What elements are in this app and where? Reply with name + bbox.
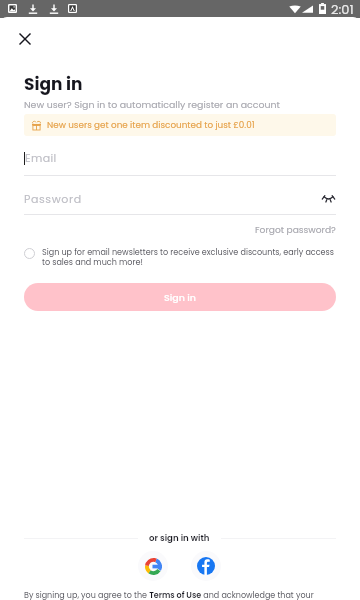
staticText: Email <box>25 150 57 165</box>
staticText: New users get one item discounted to jus… <box>47 119 255 131</box>
button[interactable]: Sign in with Google <box>138 551 168 581</box>
staticText: New user? Sign in to automatically regis… <box>24 98 280 111</box>
staticText: Forgot password? <box>255 223 336 236</box>
staticText: By signing up, you agree to the Terms of… <box>24 590 336 600</box>
staticText: or sign in with <box>149 532 210 544</box>
button[interactable]: Sign up for email newsletters to receive… <box>24 247 336 268</box>
button[interactable]: Show password <box>318 188 338 208</box>
button[interactable]: New users get one item discounted to jus… <box>24 114 336 136</box>
staticText: Sign in <box>164 291 196 304</box>
button[interactable]: Sign in with Facebook <box>191 551 221 581</box>
staticText: Password <box>24 191 82 206</box>
staticText: Sign up for email newsletters to receive… <box>42 247 336 268</box>
button[interactable]: Forgot password? <box>255 223 336 236</box>
button[interactable]: Close <box>14 28 36 50</box>
staticText: 2:01 <box>331 0 354 17</box>
staticText: Sign in <box>24 72 83 96</box>
button[interactable]: Sign in <box>24 283 336 311</box>
